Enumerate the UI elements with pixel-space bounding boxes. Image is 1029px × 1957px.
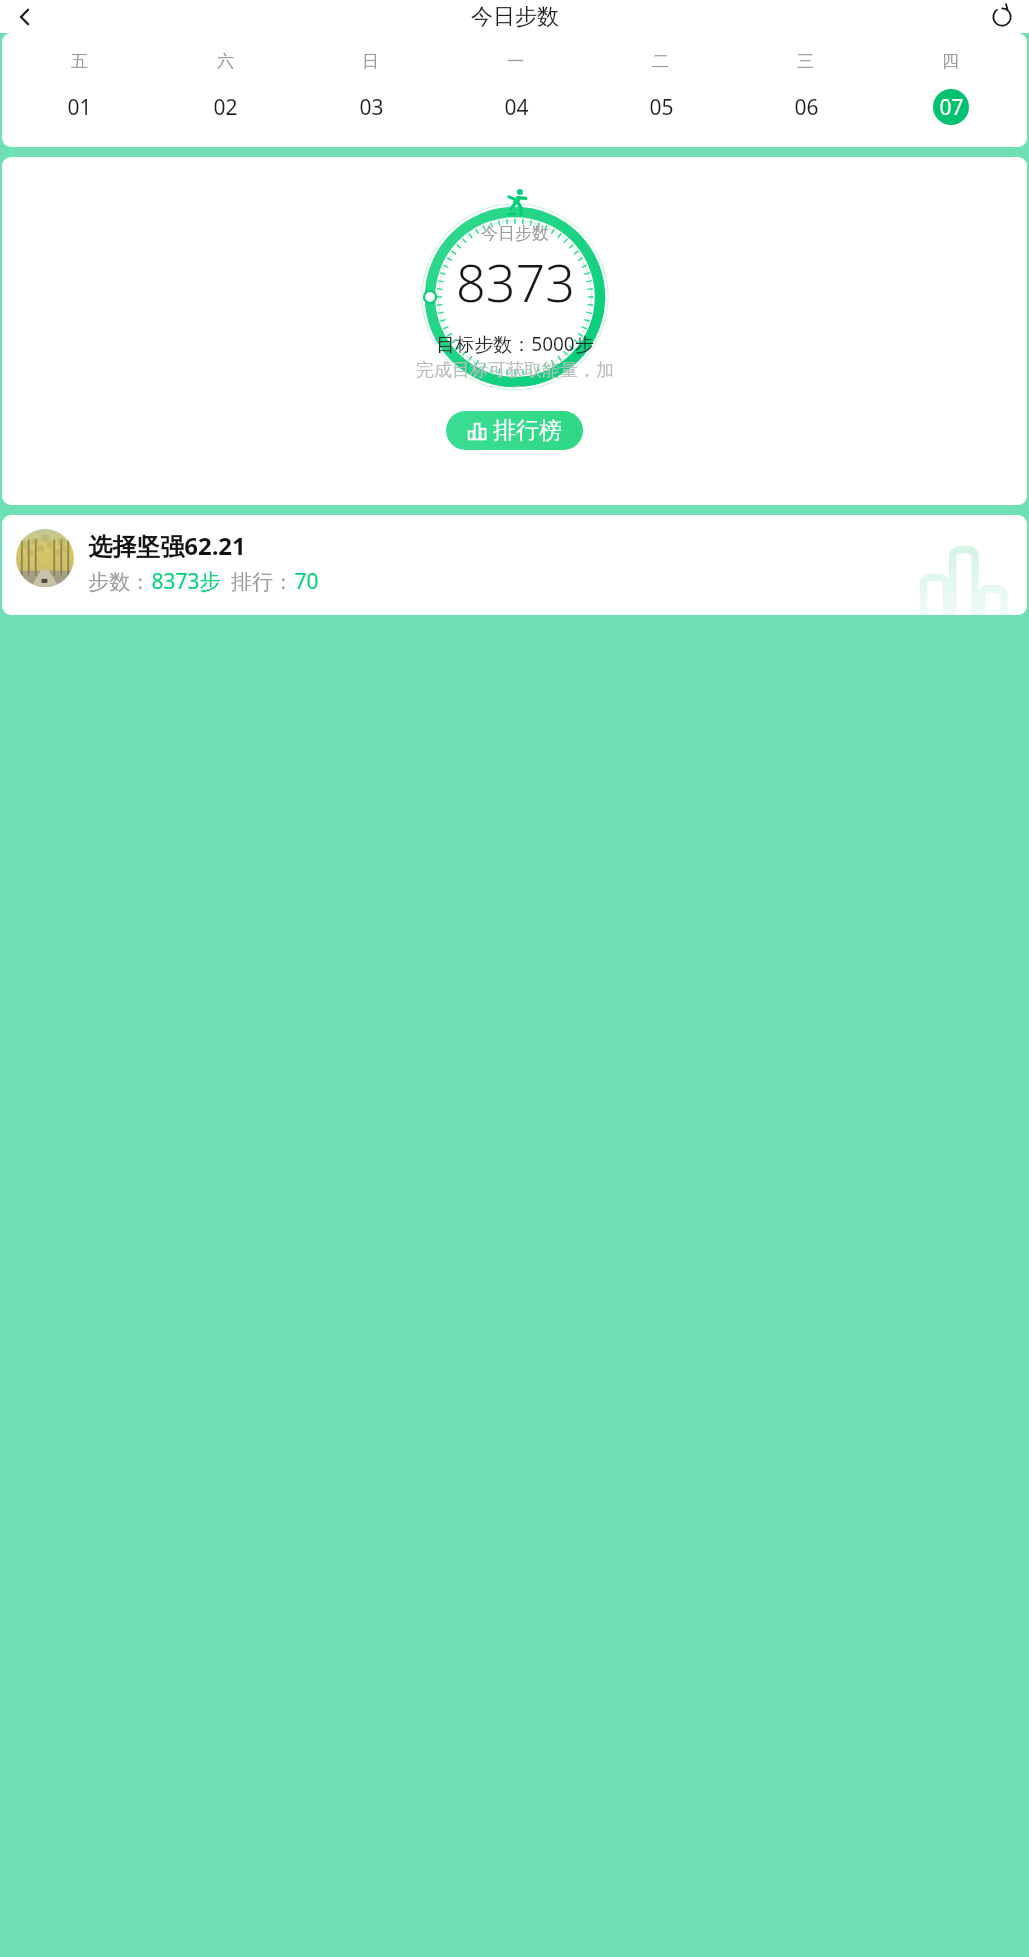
staticText: 排行：	[231, 569, 294, 595]
button[interactable]: 四	[878, 33, 1023, 125]
staticText: 目标步数：5000步	[436, 331, 594, 357]
staticText: 选择坚强62.21	[88, 529, 246, 562]
staticText: 06	[794, 93, 819, 122]
staticText: 三	[797, 51, 814, 72]
staticText: 四	[942, 51, 959, 72]
staticText: 70	[294, 567, 319, 596]
staticText: 完成目标可获取能量，加油哦！	[415, 359, 615, 387]
staticText: 02	[213, 93, 238, 122]
staticText: 07	[939, 93, 964, 122]
staticText: 一	[507, 51, 524, 72]
button[interactable]: Refresh	[981, 0, 1023, 33]
button[interactable]: 五	[6, 33, 152, 125]
staticText: 今日步数	[481, 223, 549, 244]
staticText: 04	[504, 93, 529, 122]
staticText: 步数：	[88, 569, 151, 595]
button[interactable]: 选择坚强62.21	[2, 515, 1027, 615]
button[interactable]: 六	[152, 33, 298, 125]
staticText: 05	[649, 93, 674, 122]
button[interactable]: 三	[733, 33, 878, 125]
staticText: 二	[652, 51, 669, 72]
button[interactable]: 二	[588, 33, 733, 125]
staticText: 8373步	[151, 567, 221, 596]
staticText: 五	[71, 51, 88, 72]
staticText: 8373	[456, 246, 575, 317]
staticText: 今日步数	[471, 3, 559, 31]
staticText: 01	[67, 93, 92, 122]
staticText: 六	[217, 51, 234, 72]
button[interactable]: 日	[298, 33, 443, 125]
button[interactable]: Back	[4, 0, 46, 33]
button[interactable]: 一	[443, 33, 588, 125]
staticText: 日	[362, 51, 379, 72]
button[interactable]: 排行榜	[446, 411, 583, 450]
staticText: 03	[359, 93, 384, 122]
staticText: 排行榜	[493, 416, 562, 445]
